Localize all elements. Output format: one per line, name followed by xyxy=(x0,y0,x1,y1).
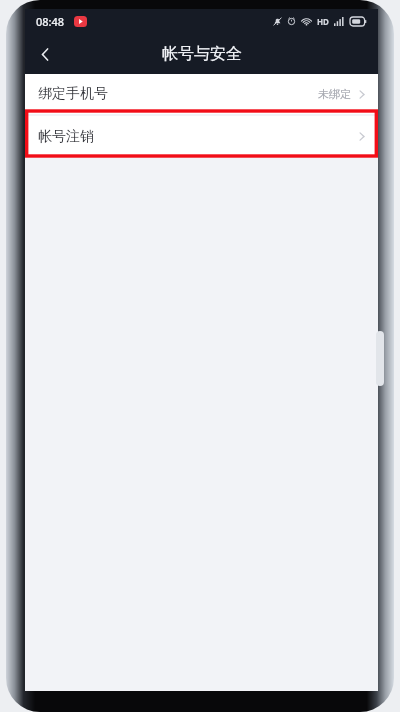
staticText: 帐号与安全 xyxy=(162,44,242,64)
button[interactable]: 绑定手机号 xyxy=(25,74,378,114)
staticText: 帐号注销 xyxy=(38,128,94,146)
button[interactable]: Back xyxy=(25,34,65,74)
staticText: 未绑定 xyxy=(318,87,351,101)
button[interactable]: 帐号注销 xyxy=(25,116,378,157)
staticText: HD xyxy=(317,16,329,27)
staticText: 绑定手机号 xyxy=(38,85,108,103)
staticText: 08:48 xyxy=(36,14,65,29)
